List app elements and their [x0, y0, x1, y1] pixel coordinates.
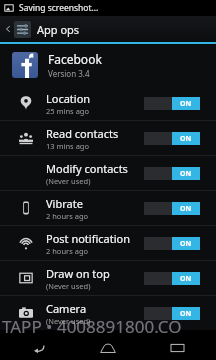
button[interactable]: Toggle permission: [144, 272, 200, 285]
staticText: Modify contacts: [46, 161, 128, 176]
button[interactable]: Navigate up: [0, 16, 216, 42]
staticText: TAPP • 4008891800.CO: [2, 315, 216, 338]
staticText: ON: [180, 309, 192, 319]
button[interactable]: Toggle permission: [144, 132, 200, 145]
staticText: Camera: [46, 301, 87, 316]
button[interactable]: Toggle permission: [144, 167, 200, 180]
staticText: Post notification: [46, 231, 131, 246]
button[interactable]: Location: [0, 86, 216, 120]
staticText: Location: [46, 91, 91, 106]
staticText: ON: [180, 274, 192, 284]
button[interactable]: Toggle permission: [144, 97, 200, 110]
staticText: Facebook: [48, 51, 102, 67]
staticText: App ops: [37, 22, 80, 37]
staticText: 2 hours ago: [46, 211, 89, 221]
staticText: Saving screenshot...: [19, 2, 99, 14]
button[interactable]: Recent apps: [147, 336, 207, 360]
button[interactable]: Toggle permission: [144, 237, 200, 250]
button[interactable]: Facebook: [0, 44, 216, 86]
staticText: ON: [180, 239, 192, 249]
staticText: (Never used): [46, 281, 91, 291]
button[interactable]: Draw on top: [0, 261, 216, 295]
button[interactable]: Toggle permission: [144, 202, 200, 215]
staticText: ON: [180, 169, 192, 179]
staticText: (Never used): [46, 176, 91, 186]
button[interactable]: Post notification: [0, 226, 216, 260]
button[interactable]: Camera: [0, 296, 216, 330]
button[interactable]: Back: [9, 336, 69, 360]
button[interactable]: Vibrate: [0, 191, 216, 225]
staticText: Vibrate: [46, 196, 83, 211]
button[interactable]: Modify contacts: [0, 156, 216, 190]
staticText: (Never used): [46, 316, 91, 326]
staticText: ON: [180, 204, 192, 214]
button[interactable]: Read contacts: [0, 121, 216, 155]
staticText: Draw on top: [46, 266, 110, 281]
staticText: Version 3.4: [48, 68, 90, 79]
staticText: ON: [180, 134, 192, 144]
staticText: 2 hours ago: [46, 246, 89, 256]
button[interactable]: Toggle permission: [144, 307, 200, 320]
staticText: Read contacts: [46, 126, 119, 141]
button[interactable]: Home: [78, 336, 138, 360]
staticText: ON: [180, 99, 192, 109]
staticText: 13 mins ago: [46, 141, 90, 151]
staticText: 25 mins ago: [46, 106, 90, 116]
